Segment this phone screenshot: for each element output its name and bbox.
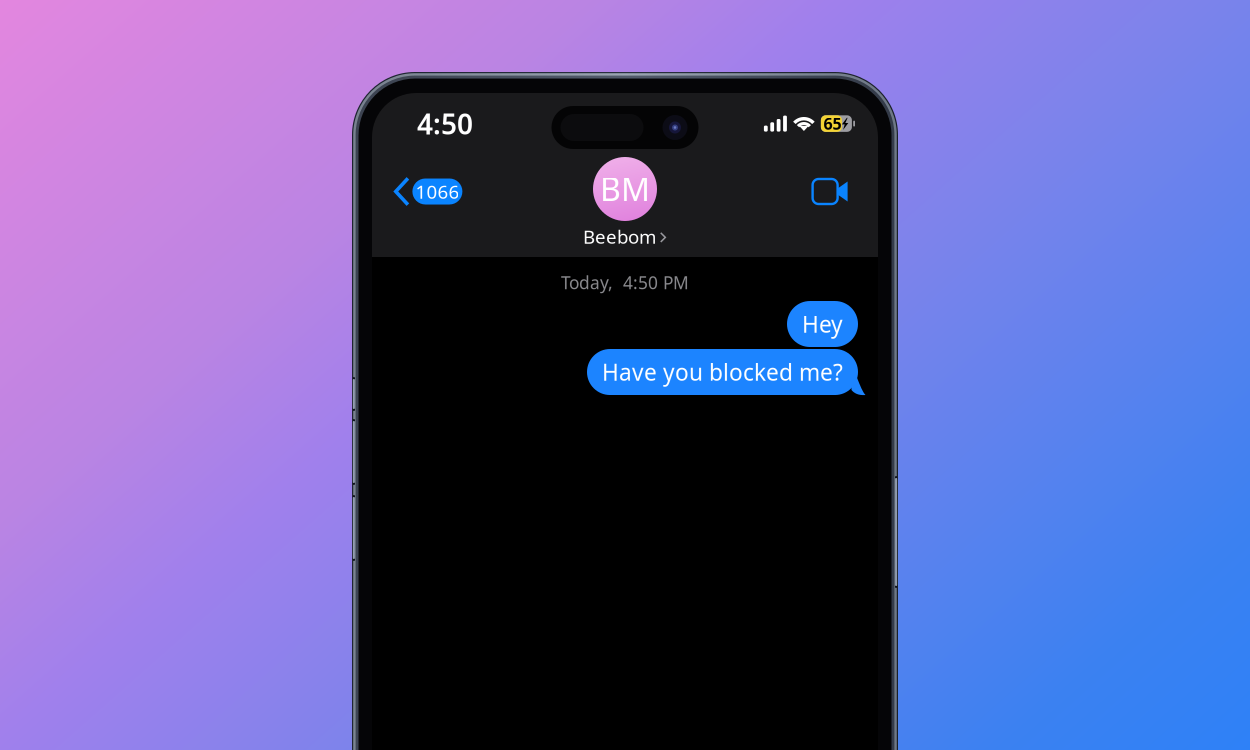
staticText: 65 [823, 113, 841, 134]
staticText: Hey [802, 309, 843, 339]
button[interactable]: FaceTime video call [799, 167, 878, 216]
staticText: 1066 [415, 179, 459, 204]
staticText: Today, 4:50 PM [561, 271, 689, 294]
button[interactable]: 1066 [372, 168, 474, 215]
button[interactable]: BM [372, 93, 878, 185]
staticText: 4:50 [417, 105, 473, 142]
staticText: BM [600, 167, 650, 210]
staticText: Beebom [583, 224, 656, 249]
staticText: Have you blocked me? [602, 357, 843, 387]
